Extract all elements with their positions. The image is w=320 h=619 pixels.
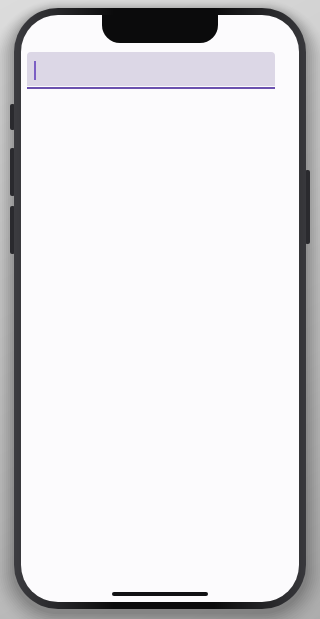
button[interactable]: Text input field [27,52,275,89]
other: Home indicator [112,592,208,596]
